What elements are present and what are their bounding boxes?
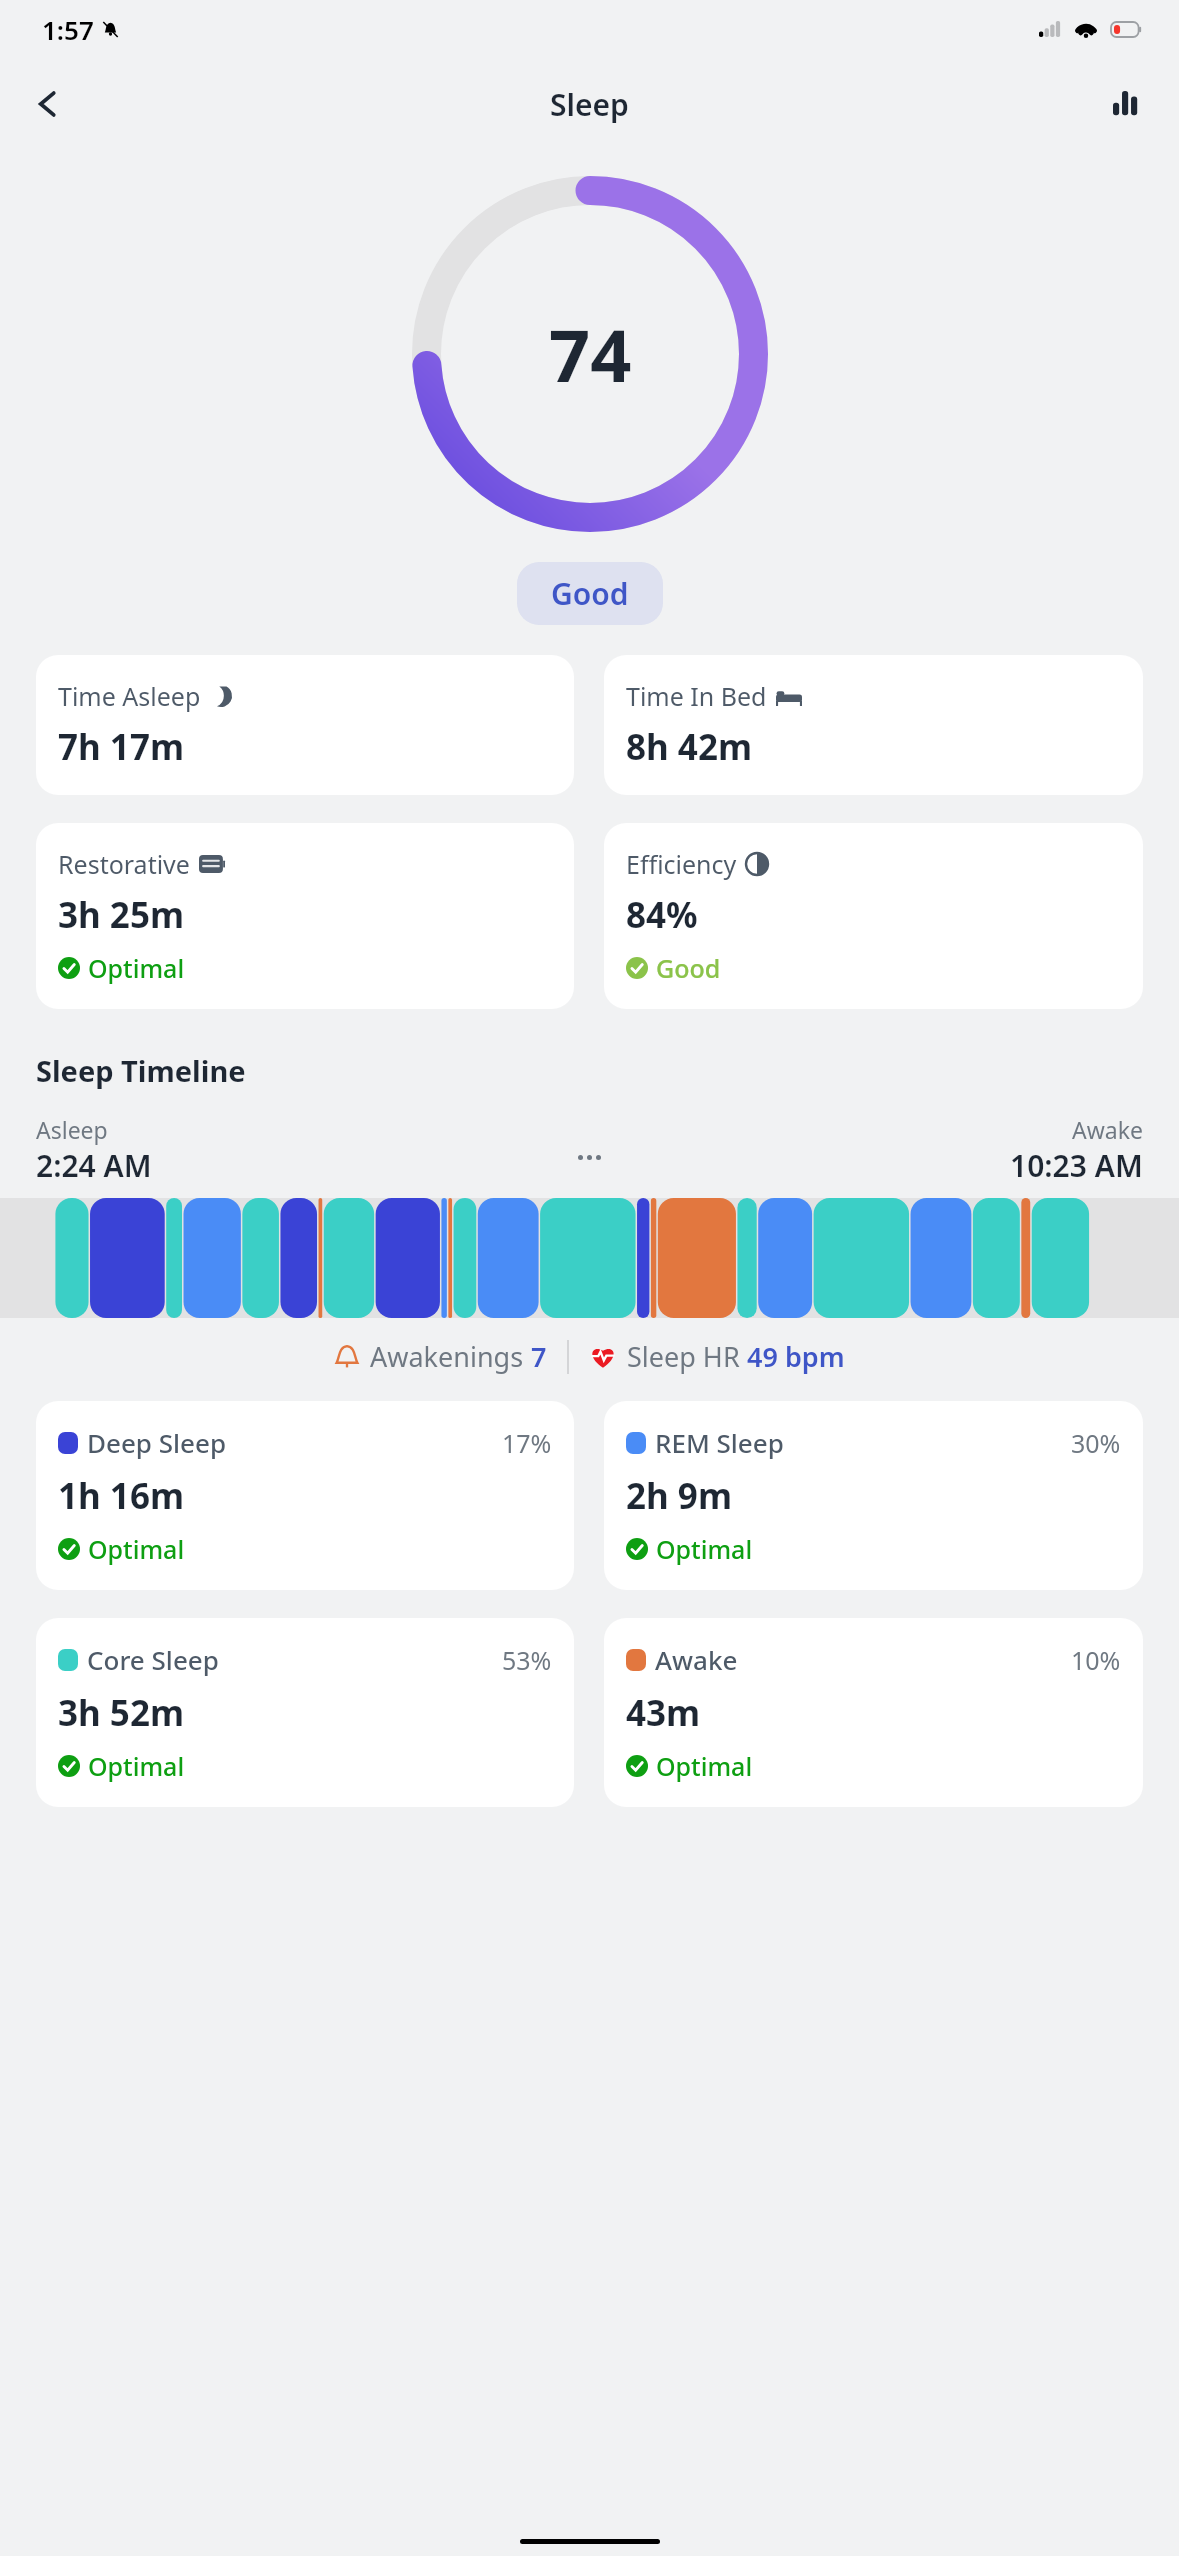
staticText: 7 xyxy=(531,1338,547,1375)
staticText: Awake xyxy=(1072,1114,1143,1145)
staticText: Good xyxy=(656,951,721,985)
button[interactable]: Good xyxy=(517,562,663,625)
staticText: 2h 9m xyxy=(626,1472,733,1520)
staticText: 3h 25m xyxy=(58,891,185,939)
staticText: Time Asleep xyxy=(58,679,201,713)
staticText: 49 bpm xyxy=(747,1338,845,1375)
staticText: Asleep xyxy=(36,1114,108,1145)
staticText: Restorative xyxy=(58,847,190,881)
button[interactable]: REM Sleep xyxy=(604,1401,1143,1590)
staticText: 74 xyxy=(549,305,632,403)
staticText: REM Sleep xyxy=(655,1425,784,1460)
staticText: Efficiency xyxy=(626,847,737,881)
button[interactable]: Sleep HR xyxy=(589,1338,845,1375)
staticText: Good xyxy=(551,573,629,614)
staticText: 1h 16m xyxy=(58,1472,185,1520)
staticText: 7h 17m xyxy=(58,723,185,771)
staticText: Time In Bed xyxy=(626,679,767,713)
staticText: 10:23 AM xyxy=(1010,1145,1143,1186)
button[interactable]: Time Asleep xyxy=(36,655,574,795)
button[interactable]: Efficiency xyxy=(604,823,1143,1009)
button[interactable]: Back xyxy=(20,76,76,132)
staticText: 84% xyxy=(626,891,698,939)
staticText: 10% xyxy=(1071,1643,1121,1677)
button[interactable]: Awakenings xyxy=(334,1338,547,1375)
staticText: 30% xyxy=(1071,1426,1121,1460)
staticText: Optimal xyxy=(88,1749,185,1783)
button[interactable]: Statistics xyxy=(1099,76,1155,132)
staticText: 17% xyxy=(502,1426,552,1460)
staticText: Sleep xyxy=(550,84,629,125)
staticText: Core Sleep xyxy=(87,1642,219,1677)
button[interactable]: Awake xyxy=(604,1618,1143,1807)
staticText: Sleep HR xyxy=(627,1338,747,1375)
staticText: Awakenings xyxy=(370,1338,531,1375)
staticText: Sleep Timeline xyxy=(36,1051,246,1090)
staticText: 53% xyxy=(502,1643,552,1677)
staticText: Optimal xyxy=(88,1532,185,1566)
button[interactable]: Deep Sleep xyxy=(36,1401,574,1590)
staticText: Optimal xyxy=(88,951,185,985)
button[interactable]: Time In Bed xyxy=(604,655,1143,795)
staticText: Awake xyxy=(655,1642,738,1677)
staticText: Optimal xyxy=(656,1532,753,1566)
staticText: Optimal xyxy=(656,1749,753,1783)
button[interactable]: Core Sleep xyxy=(36,1618,574,1807)
staticText: 43m xyxy=(626,1689,701,1737)
staticText: 1:57 xyxy=(42,12,94,47)
button[interactable]: Restorative xyxy=(36,823,574,1009)
staticText: 8h 42m xyxy=(626,723,753,771)
staticText: 3h 52m xyxy=(58,1689,185,1737)
staticText: 2:24 AM xyxy=(36,1145,152,1186)
staticText: Deep Sleep xyxy=(87,1425,227,1460)
